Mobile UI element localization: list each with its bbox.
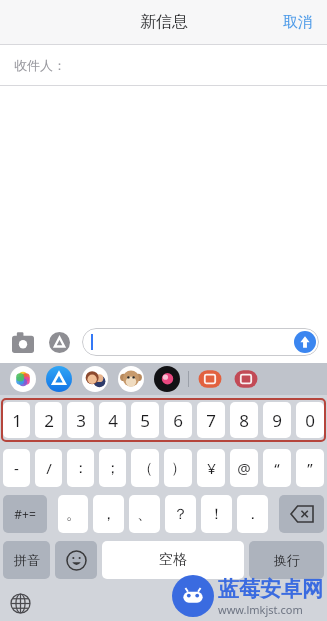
button[interactable]: Change keyboard: [3, 586, 37, 620]
staticText: 5: [140, 409, 150, 432]
staticText: 、: [137, 505, 152, 524]
staticText: 1: [12, 409, 22, 432]
button[interactable]: ；: [99, 449, 126, 487]
button[interactable]: 拼音: [3, 541, 50, 579]
staticText: 3: [76, 409, 86, 432]
staticText: 0: [305, 409, 315, 432]
button[interactable]: 8: [230, 402, 258, 438]
button[interactable]: 1: [3, 402, 30, 438]
button[interactable]: 换行: [249, 541, 324, 579]
button[interactable]: /: [35, 449, 62, 487]
button[interactable]: App M: [197, 366, 223, 392]
button[interactable]: ！: [201, 495, 232, 533]
staticText: /: [46, 458, 52, 478]
staticText: ；: [105, 459, 120, 478]
staticText: 蓝莓安卓网: [218, 576, 323, 602]
staticText: （: [138, 459, 153, 478]
staticText: 收件人：: [14, 57, 66, 73]
button[interactable]: （: [131, 449, 159, 487]
button[interactable]: 取消: [269, 3, 327, 42]
staticText: 6: [173, 409, 183, 432]
button[interactable]: App Store: [44, 327, 74, 357]
staticText: www.lmkjst.com: [218, 602, 303, 617]
button[interactable]: Backspace: [279, 495, 324, 533]
staticText: 2: [44, 409, 54, 432]
staticText: ．: [245, 505, 260, 524]
staticText: -: [14, 458, 19, 478]
button[interactable]: ，: [93, 495, 124, 533]
button[interactable]: Digital Touch: [154, 366, 180, 392]
staticText: 9: [272, 409, 282, 432]
button[interactable]: Memoji monkey: [118, 366, 144, 392]
button[interactable]: 收件人：: [0, 45, 327, 85]
staticText: 8: [239, 409, 249, 432]
staticText: @: [237, 458, 251, 478]
button[interactable]: 5: [131, 402, 159, 438]
button[interactable]: 7: [197, 402, 225, 438]
button[interactable]: Camera: [8, 327, 38, 357]
button[interactable]: 4: [99, 402, 126, 438]
button[interactable]: 2: [35, 402, 62, 438]
button[interactable]: ．: [237, 495, 268, 533]
staticText: 换行: [274, 552, 300, 568]
button[interactable]: 空格: [102, 541, 244, 579]
staticText: ？: [173, 505, 188, 524]
button[interactable]: Memoji people: [82, 366, 108, 392]
button[interactable]: ）: [164, 449, 192, 487]
button[interactable]: 6: [164, 402, 192, 438]
staticText: 取消: [283, 13, 313, 32]
button[interactable]: 3: [67, 402, 94, 438]
button[interactable]: App Store: [46, 366, 72, 392]
button[interactable]: ”: [296, 449, 324, 487]
staticText: ”: [307, 458, 313, 478]
button[interactable]: Send: [82, 328, 319, 356]
button[interactable]: ¥: [197, 449, 225, 487]
button[interactable]: ：: [67, 449, 94, 487]
button[interactable]: #+=: [3, 495, 47, 533]
button[interactable]: Emoji: [55, 541, 97, 579]
staticText: ：: [73, 459, 88, 478]
button[interactable]: “: [263, 449, 291, 487]
button[interactable]: Photos: [10, 366, 36, 392]
button[interactable]: 0: [296, 402, 324, 438]
button[interactable]: @: [230, 449, 258, 487]
staticText: 。: [66, 505, 81, 524]
staticText: ，: [101, 505, 116, 524]
button[interactable]: ？: [165, 495, 196, 533]
staticText: “: [274, 458, 280, 478]
staticText: ）: [171, 459, 186, 478]
button[interactable]: -: [3, 449, 30, 487]
staticText: 新信息: [140, 12, 188, 32]
staticText: 拼音: [14, 552, 40, 568]
button[interactable]: Send: [294, 331, 316, 353]
staticText: ¥: [207, 458, 216, 478]
staticText: #+=: [14, 506, 36, 522]
button[interactable]: 9: [263, 402, 291, 438]
staticText: 7: [206, 409, 216, 432]
button[interactable]: 。: [58, 495, 88, 533]
staticText: 空格: [159, 551, 187, 569]
button[interactable]: App W: [233, 366, 259, 392]
button[interactable]: 、: [129, 495, 160, 533]
staticText: 4: [108, 409, 118, 432]
staticText: ！: [209, 505, 224, 524]
